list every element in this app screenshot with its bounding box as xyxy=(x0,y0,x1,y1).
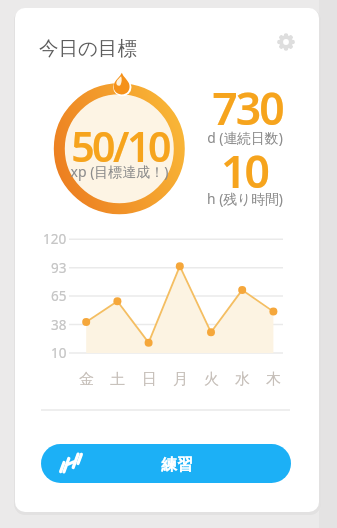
staticText: 730 xyxy=(212,77,283,138)
staticText: 10 xyxy=(51,344,67,362)
staticText: d (連続日数) xyxy=(207,128,283,147)
button[interactable] xyxy=(276,32,296,52)
staticText: 月 xyxy=(173,370,188,389)
button[interactable] xyxy=(41,444,291,483)
staticText: 火 xyxy=(204,370,219,389)
staticText: 水 xyxy=(235,370,250,389)
staticText: 日 xyxy=(142,370,157,389)
staticText: h (残り時間) xyxy=(207,189,283,208)
staticText: 今日の目標 xyxy=(39,36,137,61)
staticText: 土 xyxy=(110,370,125,389)
staticText: 練習 xyxy=(161,455,193,475)
staticText: 120 xyxy=(43,230,67,248)
staticText: 38 xyxy=(51,316,67,334)
staticText: 木 xyxy=(266,370,281,389)
staticText: 金 xyxy=(79,370,94,389)
staticText: 93 xyxy=(51,259,67,277)
staticText: 50/10 xyxy=(71,118,169,174)
staticText: 65 xyxy=(51,287,67,305)
staticText: 10 xyxy=(221,140,268,201)
staticText: xp (目標達成！) xyxy=(70,162,169,181)
